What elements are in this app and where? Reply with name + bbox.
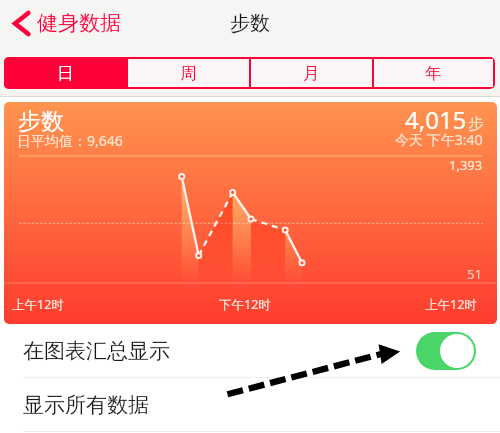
button[interactable]: 在图表汇总显示 [0,324,500,377]
button[interactable]: Toggle chart summary [416,332,476,370]
staticText: 51 [467,265,482,283]
staticText: 步数 [230,11,270,36]
staticText: 今天 下午3:40 [395,130,483,149]
staticText: 在图表汇总显示 [23,338,170,364]
staticText: 上午12时 [425,296,477,313]
staticText: 4,015 [405,103,467,136]
button[interactable]: 显示所有数据 [0,378,500,431]
button[interactable]: 年 [374,59,493,87]
button[interactable]: 周 [128,59,249,87]
button[interactable]: 月 [251,59,372,87]
staticText: 日平均值：9,646 [17,131,123,150]
button[interactable]: 日 [4,57,126,89]
staticText: 周 [180,63,197,84]
staticText: 显示所有数据 [23,392,149,418]
staticText: 年 [425,63,442,84]
staticText: 日 [57,63,74,84]
staticText: 1,393 [449,156,483,174]
staticText: 健身数据 [37,10,121,36]
staticText: 步 [468,114,484,134]
staticText: 上午12时 [12,296,64,313]
staticText: 月 [303,63,320,84]
button[interactable]: 健身数据 [0,10,129,36]
staticText: 步数 [18,107,64,136]
staticText: 下午12时 [219,296,271,313]
